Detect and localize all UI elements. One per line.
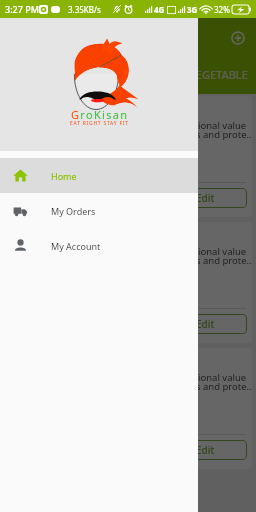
staticText: VEGETABLE xyxy=(189,67,248,82)
staticText: Fresh Vegetable xyxy=(48,30,148,48)
staticText: Edit xyxy=(196,191,215,205)
staticText: 3.35KB/s xyxy=(68,4,101,15)
staticText: Edit xyxy=(196,443,215,457)
button[interactable]: My Account xyxy=(0,228,198,263)
staticText: My Orders xyxy=(51,205,96,217)
button[interactable]: My Orders xyxy=(0,193,198,228)
staticText: 32% xyxy=(214,4,230,15)
button[interactable]: Spinach xyxy=(4,222,252,343)
staticText: Home xyxy=(51,170,77,182)
staticText: GroKisan xyxy=(71,107,129,122)
button[interactable]: Edit xyxy=(163,188,247,208)
staticText: Rich in nutritional value with vitamins … xyxy=(141,245,252,267)
staticText: 4G xyxy=(154,4,165,15)
button[interactable]: Spinach xyxy=(4,348,252,469)
staticText: 3:27 PM xyxy=(5,3,39,15)
button[interactable]: Spinach xyxy=(4,96,252,217)
staticText: 3G xyxy=(187,4,198,15)
button[interactable]: Edit xyxy=(163,440,247,460)
button[interactable]: Edit xyxy=(163,314,247,334)
staticText: Rich in nutritional value with vitamins … xyxy=(141,119,252,141)
staticText: Edit xyxy=(196,317,215,331)
button[interactable]: Delete xyxy=(12,188,96,208)
staticText: Delete xyxy=(38,191,70,205)
button[interactable]: VEGETABLE xyxy=(189,67,256,82)
staticText: Rich in nutritional value with vitamins … xyxy=(141,371,252,393)
button[interactable]: Home xyxy=(0,158,198,193)
staticText: EAT RIGHT STAY FIT xyxy=(70,120,129,127)
staticText: My Account xyxy=(51,240,101,252)
button[interactable]: Add xyxy=(231,31,245,45)
